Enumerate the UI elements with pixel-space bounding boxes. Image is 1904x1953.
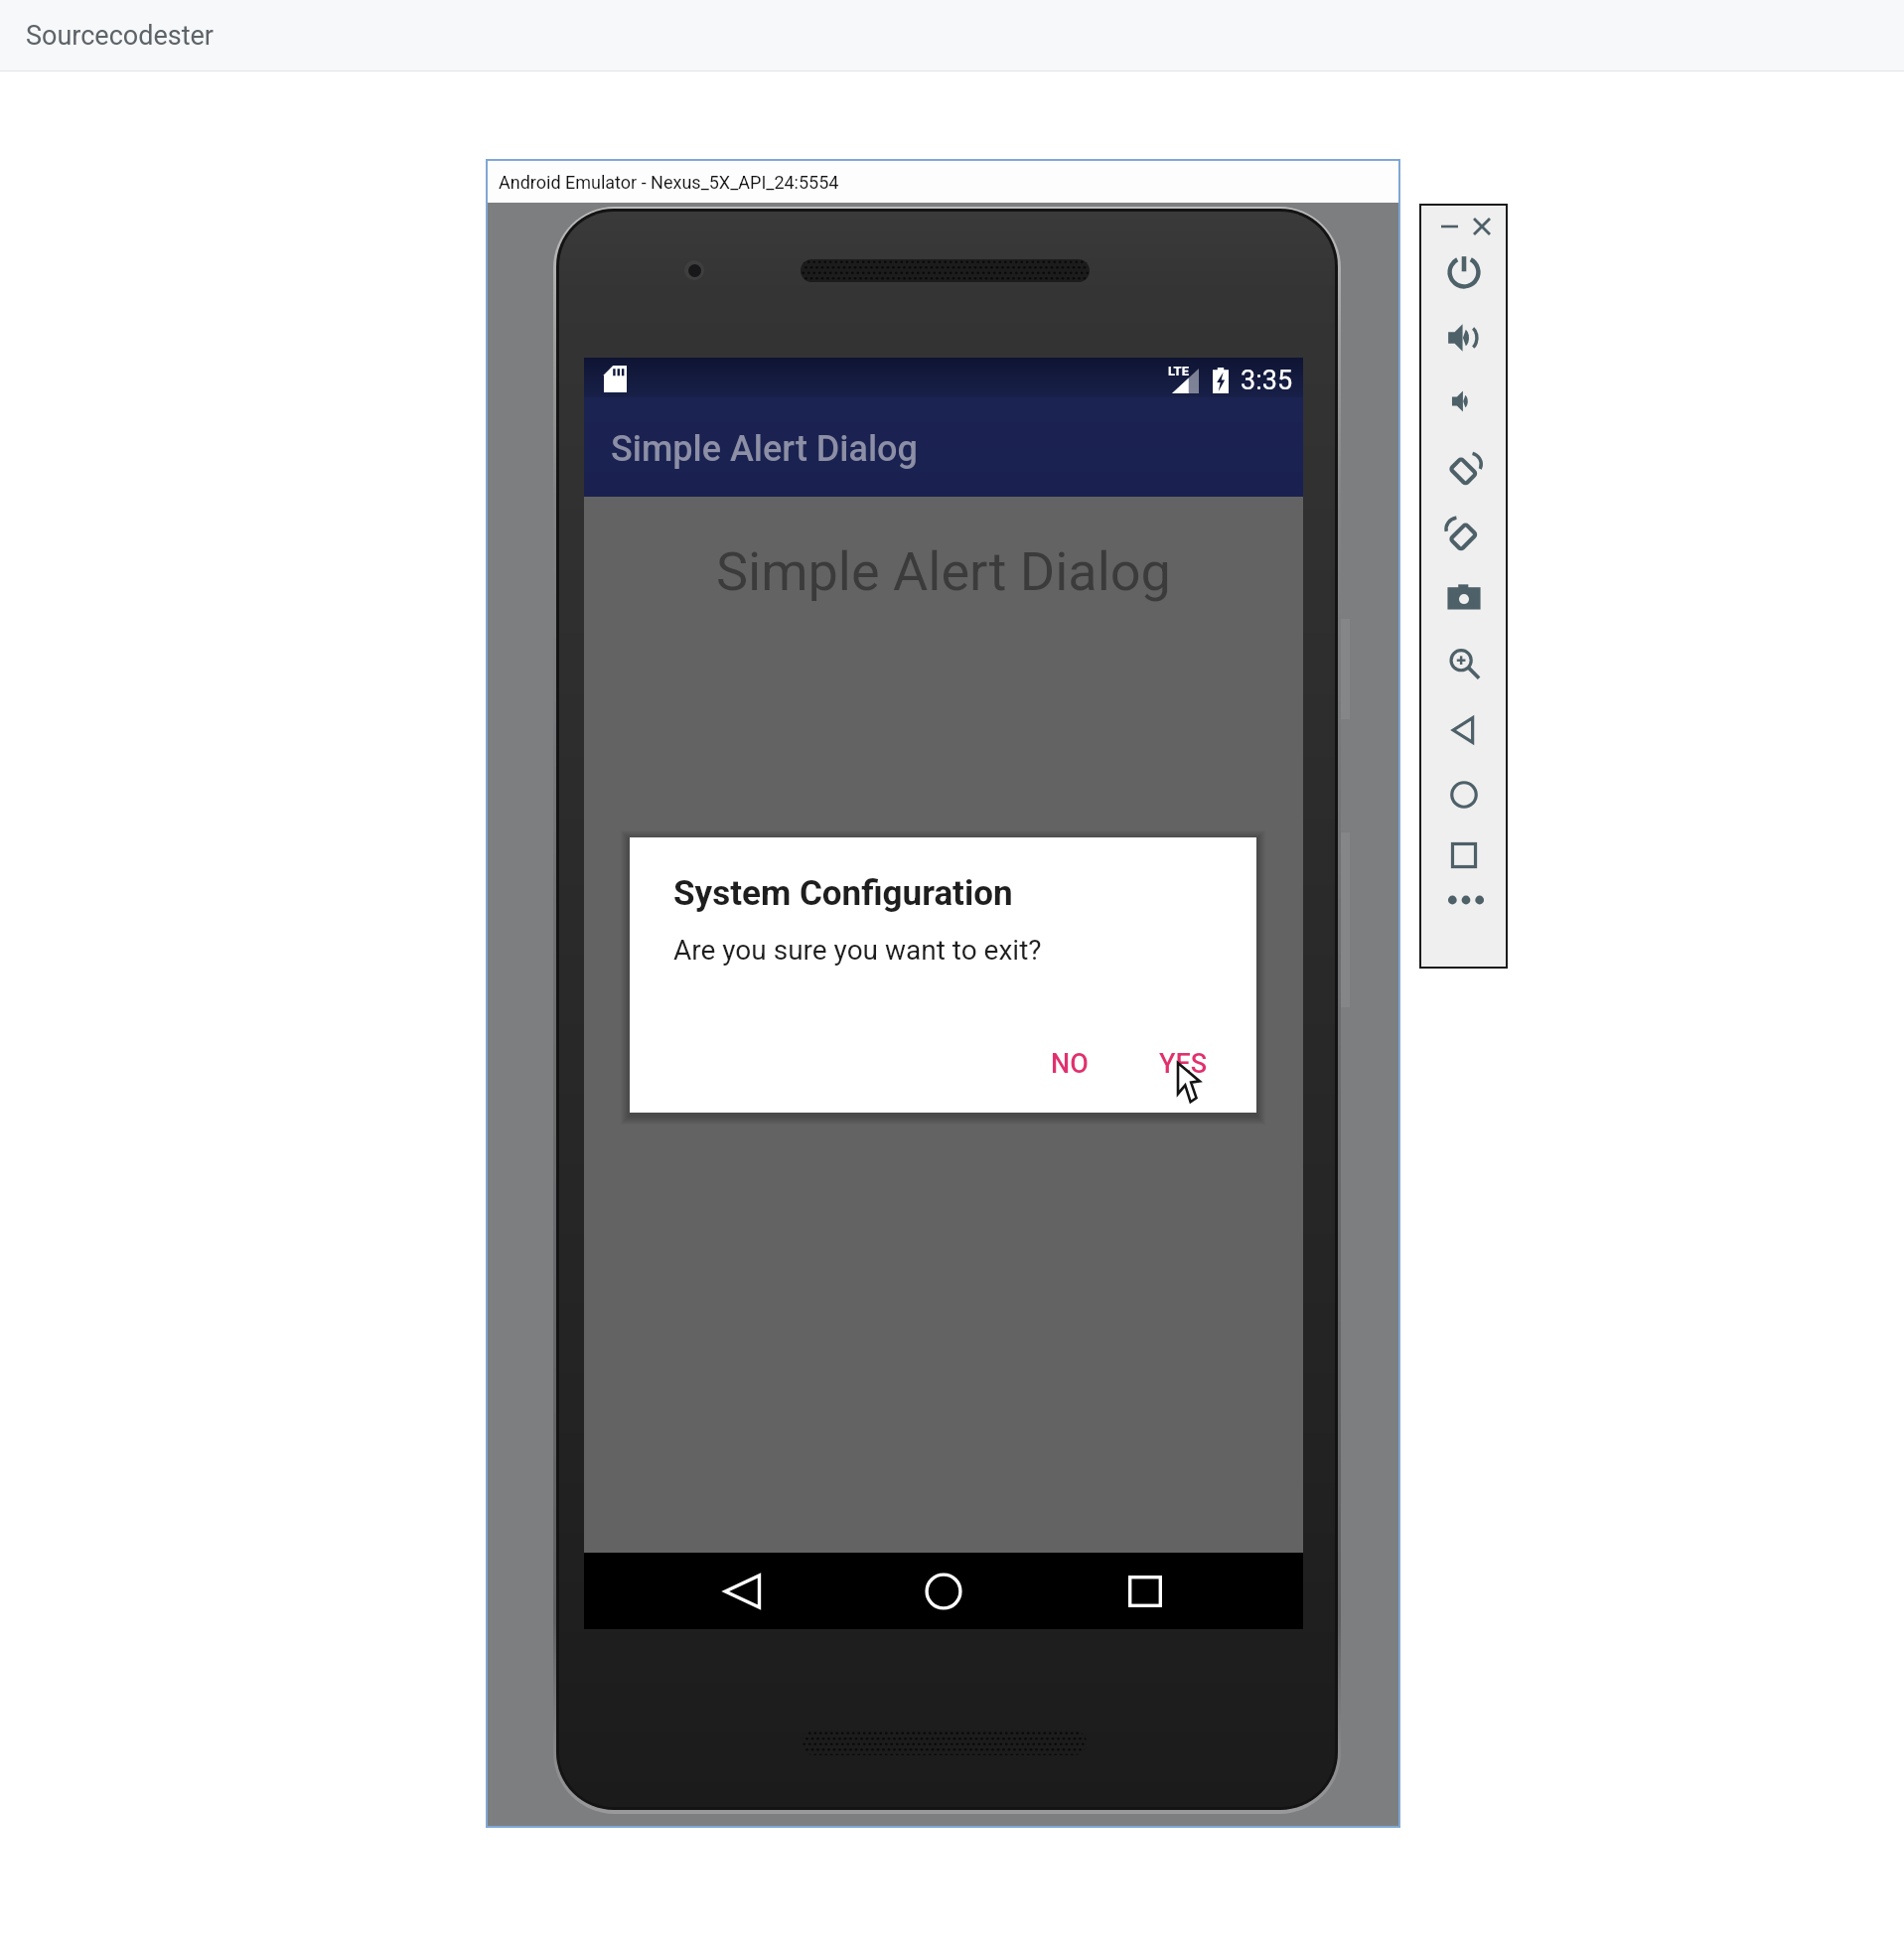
staticText: Simple Alert Dialog — [716, 540, 1171, 603]
button[interactable]: Minimize — [1433, 212, 1465, 241]
staticText: LTE — [1168, 364, 1189, 378]
staticText: NO — [1051, 1048, 1089, 1080]
button[interactable]: Overview — [1439, 832, 1489, 878]
button[interactable]: Rotate left — [1439, 447, 1489, 493]
button[interactable]: Volume down — [1439, 378, 1489, 424]
button[interactable]: Zoom — [1439, 642, 1489, 687]
button[interactable]: Back — [715, 1565, 769, 1618]
staticText: Simple Alert Dialog — [611, 428, 918, 470]
button[interactable]: Rotate right — [1439, 513, 1489, 558]
button[interactable]: Close — [1466, 212, 1498, 241]
button[interactable]: Take screenshot — [1439, 575, 1489, 621]
button[interactable]: Home — [1439, 772, 1489, 818]
staticText: Sourcecodester — [26, 20, 214, 52]
button[interactable]: Recent apps — [1118, 1565, 1172, 1618]
staticText: Android Emulator - Nexus_5X_API_24:5554 — [499, 172, 839, 193]
button[interactable]: YES — [1139, 1034, 1228, 1094]
button[interactable]: Back — [1439, 707, 1489, 753]
staticText: System Configuration — [673, 873, 1013, 914]
staticText: Are you sure you want to exit? — [673, 934, 1042, 967]
staticText: 3:35 — [1241, 365, 1293, 396]
button[interactable]: Sourcecodester — [0, 0, 1904, 72]
button[interactable]: Volume up — [1439, 315, 1489, 361]
button[interactable]: Power — [1439, 249, 1489, 295]
button[interactable]: Home — [917, 1565, 970, 1618]
button[interactable]: NO — [1031, 1034, 1108, 1094]
button[interactable]: More options — [1443, 885, 1488, 915]
staticText: YES — [1159, 1048, 1208, 1080]
